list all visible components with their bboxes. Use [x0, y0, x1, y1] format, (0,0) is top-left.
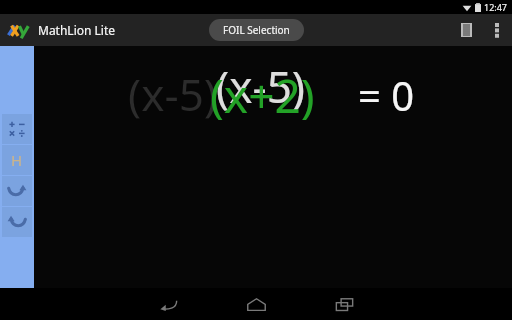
button[interactable]: Operations [2, 114, 32, 144]
button[interactable]: Recents [300, 288, 388, 320]
button[interactable]: Highlight [2, 145, 32, 175]
button[interactable]: Redo [2, 176, 32, 206]
button[interactable]: FOIL Selection [209, 19, 304, 41]
staticText: 12:47 [484, 1, 508, 13]
button[interactable]: More options [482, 15, 512, 45]
staticText: (x-5) [128, 64, 218, 124]
staticText: H [11, 150, 23, 170]
staticText: (x-5) [216, 56, 306, 116]
button[interactable]: Undo [2, 207, 32, 237]
staticText: MathLion Lite [38, 22, 116, 38]
staticText: (x+2) [210, 64, 315, 127]
button[interactable]: Home [212, 288, 300, 320]
staticText: = 0 [358, 68, 415, 122]
button[interactable]: List view [450, 14, 482, 46]
button[interactable]: Back [124, 288, 212, 320]
staticText: FOIL Selection [223, 23, 290, 37]
